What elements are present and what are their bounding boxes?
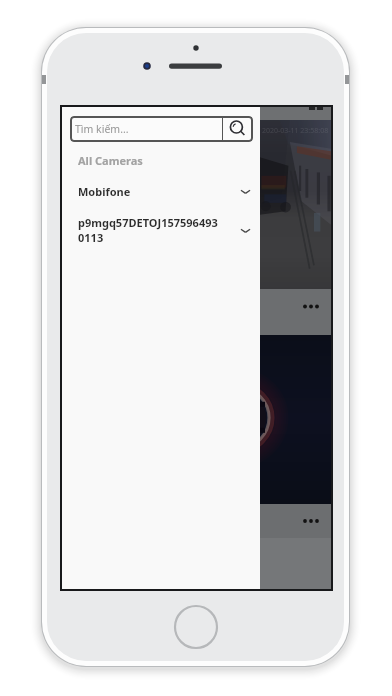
staticText: Tìm kiếm... bbox=[75, 122, 129, 136]
staticText: 2020-03-11 23:58:08 bbox=[262, 126, 329, 136]
button[interactable]: More options bbox=[260, 504, 331, 538]
button[interactable]: More options bbox=[260, 289, 331, 335]
button[interactable]: Tìm kiếm... bbox=[70, 116, 222, 142]
staticText: Mobifone bbox=[78, 184, 220, 199]
staticText: p9mgq57DETOJ1575964930113 bbox=[78, 215, 220, 245]
button[interactable]: Search bbox=[223, 116, 253, 142]
staticText: All Cameras bbox=[78, 153, 143, 168]
button[interactable]: p9mgq57DETOJ1575964930113 bbox=[62, 213, 260, 247]
button[interactable]: Mobifone bbox=[62, 182, 260, 201]
